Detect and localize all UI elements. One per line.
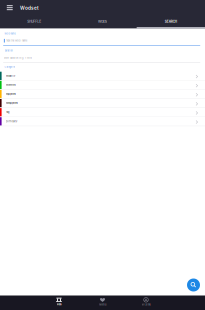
staticText: Modality [6, 74, 15, 77]
staticText: SEARCH [165, 20, 177, 23]
button[interactable]: Movement [0, 81, 205, 90]
staticText: WODs [56, 303, 61, 306]
button[interactable]: Menu [0, 0, 19, 16]
staticText: Equipment [6, 93, 16, 95]
button[interactable]: Modality [0, 72, 205, 81]
button[interactable]: My profile [124, 295, 167, 310]
staticText: Movement [6, 84, 16, 86]
staticText: WOD name [4, 32, 15, 35]
button[interactable]: SHUFFLE [0, 16, 68, 28]
staticText: Type the WOD name [6, 39, 27, 42]
button[interactable]: Tag [0, 108, 205, 117]
staticText: SHUFFLE [27, 20, 41, 23]
button[interactable]: Difficulty [0, 117, 205, 126]
button[interactable]: Favorites [81, 295, 124, 310]
staticText: Tag [6, 111, 9, 114]
staticText: Wodset [20, 5, 39, 11]
button[interactable]: Exequipment [0, 99, 205, 108]
button[interactable]: WODS [68, 16, 137, 28]
staticText: Favorites [98, 303, 106, 306]
staticText: Duration [5, 49, 13, 52]
button[interactable]: SEARCH [137, 16, 205, 28]
staticText: WODS [98, 20, 107, 23]
staticText: Difficulty [6, 120, 17, 123]
staticText: Enter duration (e.g. 1 min) [4, 57, 32, 59]
staticText: Exequipment [6, 102, 18, 104]
button[interactable]: Equipment [0, 90, 205, 99]
button[interactable]: Search [187, 278, 200, 291]
staticText: Categories [4, 66, 15, 68]
staticText: My profile [141, 303, 150, 306]
button[interactable]: WODs [37, 295, 80, 310]
